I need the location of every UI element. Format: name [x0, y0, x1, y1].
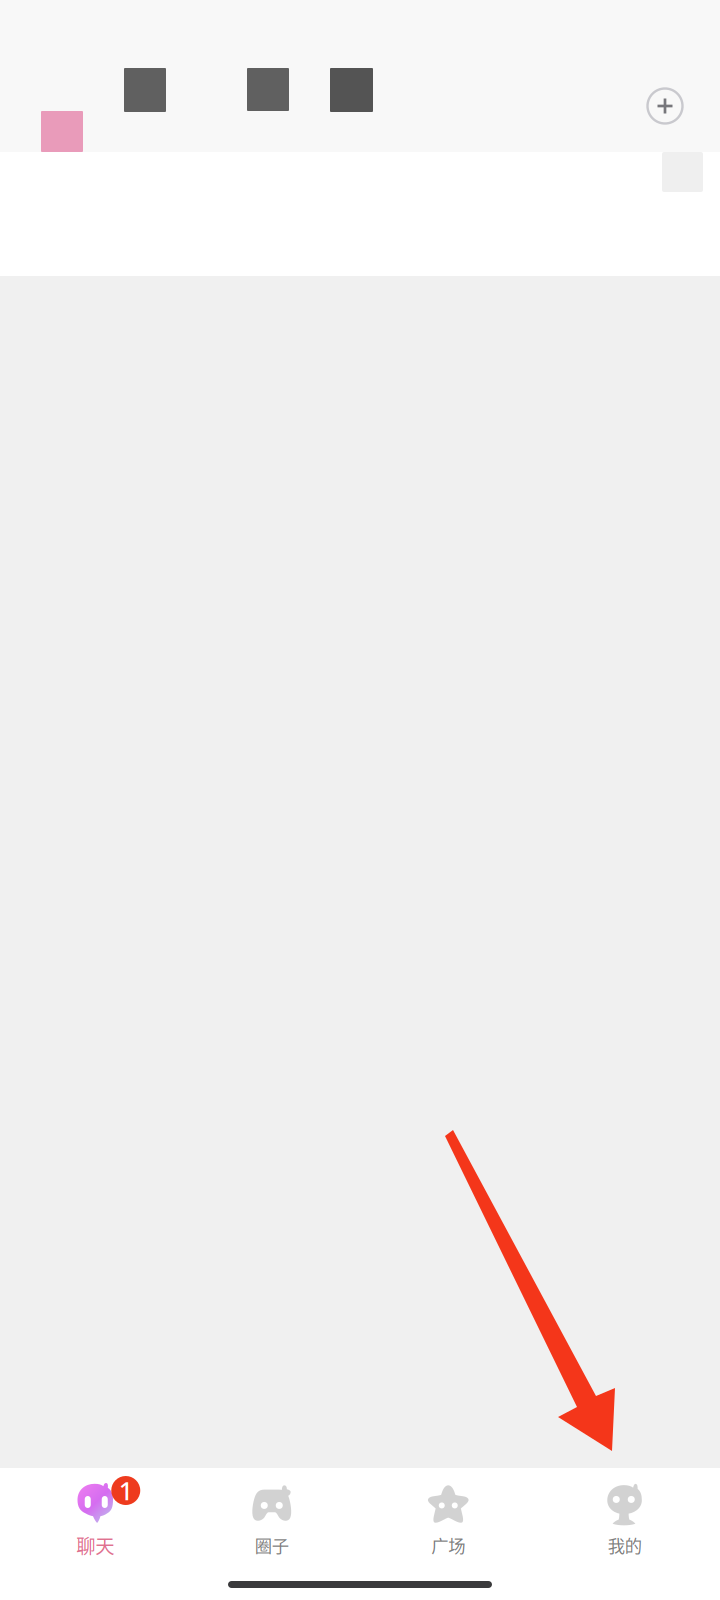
button[interactable]: 圈子: [183, 1469, 360, 1559]
staticText: 1: [119, 1474, 133, 1507]
staticText: 聊天: [76, 1531, 114, 1559]
staticText: 我的: [608, 1532, 642, 1557]
staticText: 广场: [431, 1532, 465, 1557]
button[interactable]: 我的: [536, 1469, 713, 1559]
button[interactable]: 1: [7, 1468, 183, 1561]
staticText: 圈子: [255, 1532, 289, 1557]
button[interactable]: 广场: [360, 1469, 536, 1559]
button[interactable]: Add: [637, 78, 693, 134]
